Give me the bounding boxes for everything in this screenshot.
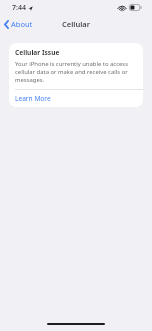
staticText: Cellular Issue — [15, 48, 60, 57]
staticText: Your iPhone is currently unable to acces… — [15, 60, 137, 84]
staticText: 7:44 — [12, 3, 26, 13]
staticText: Learn More — [15, 94, 51, 103]
button[interactable]: About — [0, 17, 38, 31]
other: Battery — [129, 4, 142, 11]
button[interactable]: Learn More — [9, 90, 143, 107]
other: Wi-Fi — [118, 5, 126, 11]
staticText: Cellular — [62, 19, 90, 29]
staticText: About — [11, 19, 33, 29]
